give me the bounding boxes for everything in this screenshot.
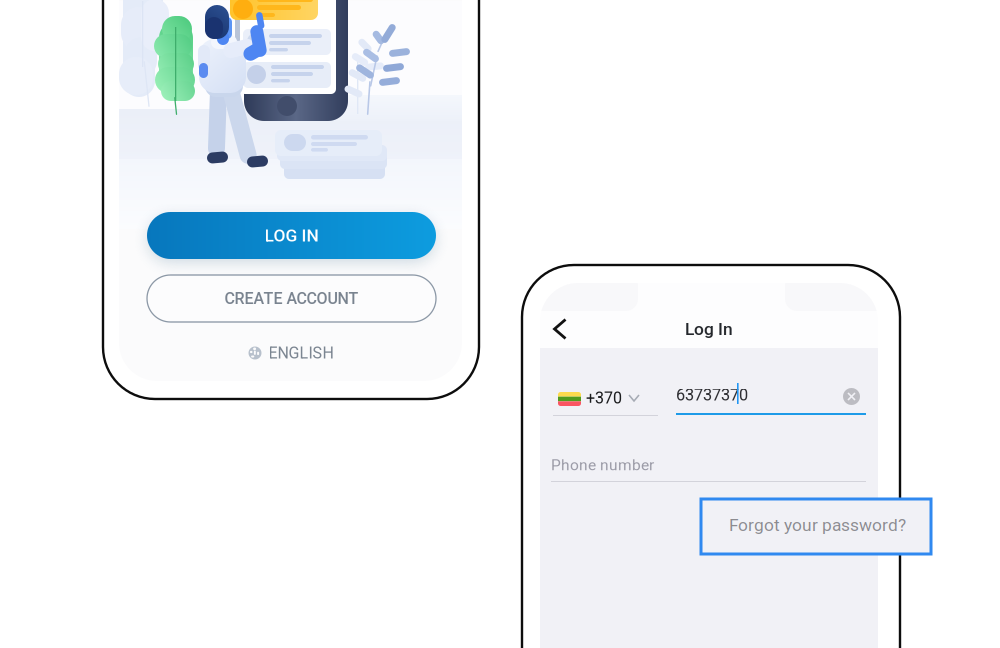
staticText: +370 <box>586 389 622 407</box>
button[interactable]: Forgot your password? <box>701 499 931 554</box>
button[interactable]: LOG IN <box>147 212 436 259</box>
staticText: Forgot your password? <box>729 515 906 535</box>
staticText: 63737370 <box>676 385 748 405</box>
button[interactable]: Clear <box>843 388 860 405</box>
staticText: LOG IN <box>264 225 318 246</box>
button[interactable]: Back <box>544 313 576 345</box>
staticText: ENGLISH <box>268 344 333 362</box>
button[interactable]: CREATE ACCOUNT <box>147 275 436 322</box>
staticText: Log In <box>685 319 733 339</box>
button[interactable]: ENGLISH <box>248 344 333 362</box>
staticText: Phone number <box>551 456 654 474</box>
staticText: CREATE ACCOUNT <box>224 289 358 308</box>
